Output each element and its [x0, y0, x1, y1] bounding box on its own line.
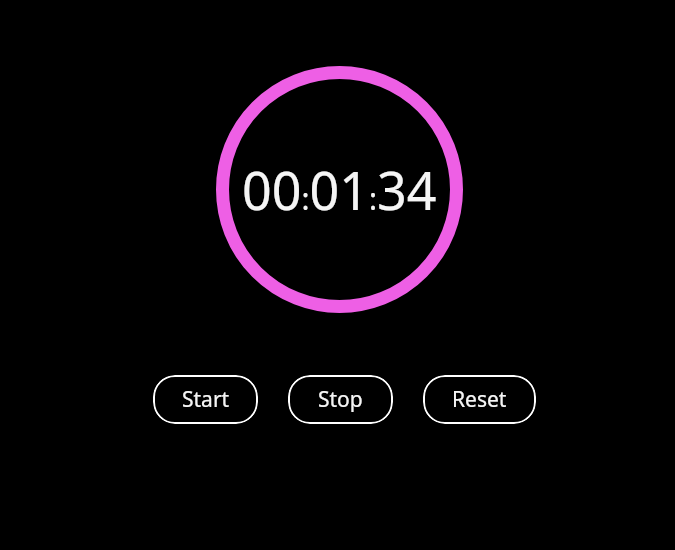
staticText: 00:01:34 — [242, 154, 437, 225]
staticText: Stop — [318, 385, 363, 414]
button[interactable]: Stop — [288, 375, 393, 424]
staticText: Start — [182, 385, 230, 414]
button[interactable]: Start — [153, 375, 258, 424]
button[interactable]: Reset — [423, 375, 536, 424]
staticText: Reset — [452, 385, 507, 414]
